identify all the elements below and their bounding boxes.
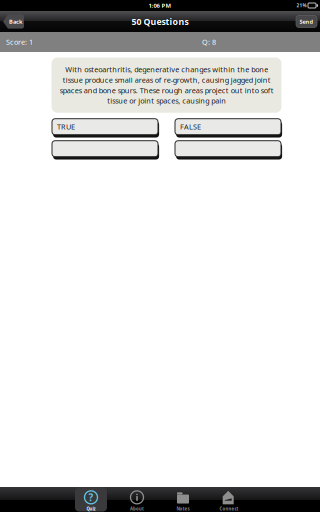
button[interactable]: FALSE [174,119,282,138]
staticText: About [130,506,144,512]
staticText: With osteoarthritis, degenerative change… [59,64,273,106]
staticText: Connect [219,506,238,512]
staticText: ? [88,491,93,504]
staticText: 1:06 PM [148,1,171,9]
staticText: 21% [296,2,306,9]
staticText: Score: 1 [6,37,33,47]
button[interactable]: TRUE [51,119,159,138]
staticText: Q: 8 [202,37,216,47]
button[interactable]: Notes [167,487,199,511]
button[interactable]: Connect [213,487,245,511]
button[interactable]: Send [296,15,317,27]
button[interactable]: ? [75,487,107,511]
staticText: Notes [176,506,189,512]
staticText: Quiz [86,506,95,512]
button[interactable]: Back [3,14,24,29]
staticText: FALSE [180,122,201,132]
button[interactable] [174,141,282,160]
staticText: Back [9,18,22,25]
staticText: TRUE [57,122,75,132]
staticText: 50 Questions [131,15,188,27]
button[interactable] [51,141,159,160]
button[interactable]: About [121,487,153,511]
staticText: Send [299,18,313,25]
